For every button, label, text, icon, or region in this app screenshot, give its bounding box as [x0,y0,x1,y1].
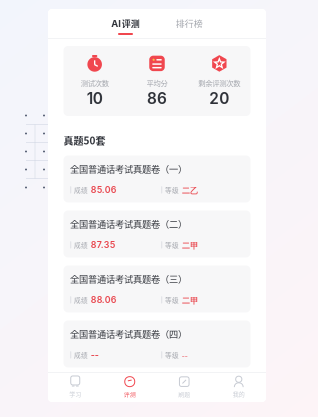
staticText: 二甲 [182,294,198,306]
staticText: 测试次数 [81,77,109,88]
staticText: 成绩 [74,185,88,195]
button[interactable]: 学习 [48,376,102,398]
staticText: 二乙 [182,184,198,196]
staticText: 我的 [233,390,245,398]
staticText: 成绩 [74,295,88,305]
staticText: 等级 [165,295,179,305]
staticText: 86 [147,89,167,108]
staticText: 刷题 [178,390,190,398]
staticText: 等级 [165,240,179,250]
staticText: 评测 [124,390,136,398]
staticText: 成绩 [74,350,88,360]
staticText: 全国普通话考试真题卷（三） [70,272,187,285]
staticText: 评测 [122,17,140,30]
staticText: 85.06 [91,185,117,195]
button[interactable]: 我的 [211,376,266,398]
staticText: 学习 [69,390,81,398]
staticText: 排行榜 [176,17,203,30]
button[interactable]: 全国普通话考试真题卷（二） [63,210,250,257]
button[interactable]: 刷题 [157,376,211,398]
staticText: -- [91,350,99,360]
staticText: 真题50套 [63,133,105,147]
staticText: 等级 [165,350,179,360]
button[interactable]: 评测 [102,376,157,398]
button[interactable]: 全国普通话考试真题卷（四） [63,320,250,367]
staticText: 全国普通话考试真题卷（一） [70,162,187,175]
staticText: 10 [87,89,103,108]
staticText: 成绩 [74,240,88,250]
staticText: AI [111,18,121,29]
staticText: 20 [209,89,229,108]
staticText: 平均分 [146,77,167,88]
staticText: 全国普通话考试真题卷（二） [70,217,187,230]
staticText: 二甲 [182,239,198,251]
staticText: 87.35 [91,240,116,250]
staticText: -- [182,349,188,361]
staticText: 88.06 [91,295,117,305]
staticText: 全国普通话考试真题卷（四） [70,327,187,340]
button[interactable]: 全国普通话考试真题卷（三） [63,265,250,312]
button[interactable]: AI [111,17,140,35]
button[interactable]: 排行榜 [176,17,203,35]
button[interactable]: 全国普通话考试真题卷（一） [63,155,250,202]
staticText: 等级 [165,185,179,195]
staticText: 剩余评测次数 [198,77,240,88]
